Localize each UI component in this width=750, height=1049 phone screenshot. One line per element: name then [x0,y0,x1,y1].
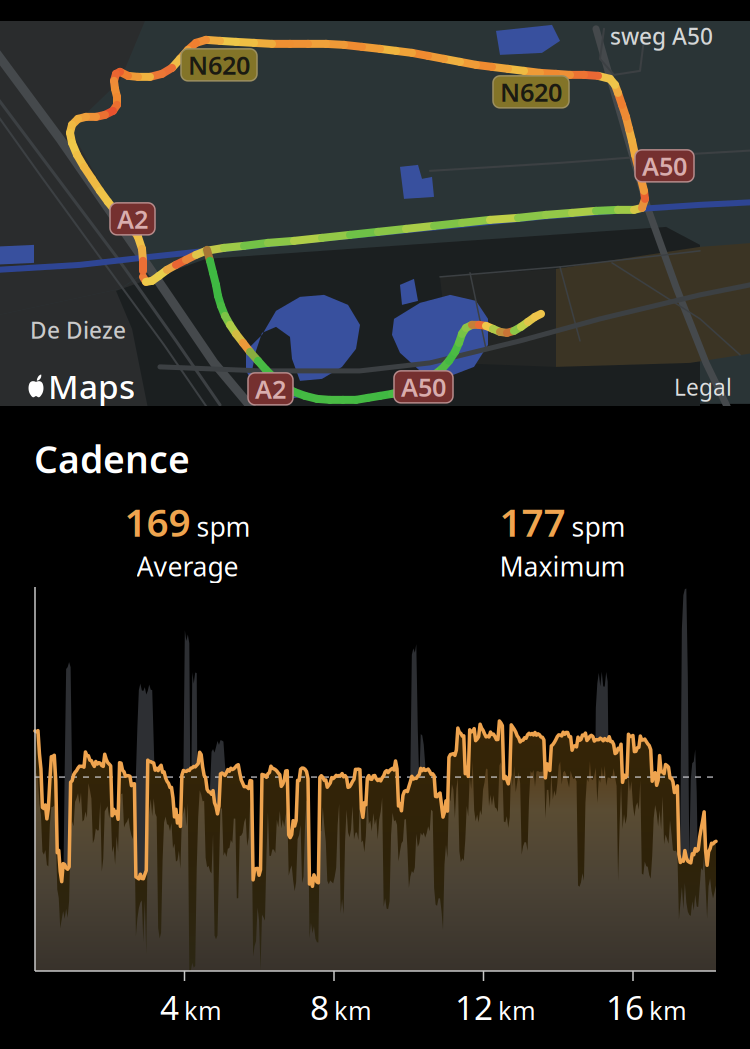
staticText: 177 [499,496,565,547]
staticText: A50 [401,370,446,404]
staticText: 12 [455,985,493,1029]
staticText: km [649,993,687,1027]
staticText: 4 [160,985,179,1029]
staticText: Maps [48,364,135,408]
staticText: 8 [310,985,329,1029]
staticText: Legal [674,372,732,402]
staticText: N620 [500,75,562,109]
staticText: De Dieze [30,315,126,345]
staticText: A2 [255,372,286,406]
staticText: spm [571,509,625,544]
staticText: km [334,993,372,1027]
staticText: A50 [642,149,687,183]
staticText: km [498,993,536,1027]
staticText: Maximum [499,548,625,584]
staticText: km [184,993,222,1027]
staticText: spm [196,509,250,544]
staticText: A2 [117,202,148,236]
staticText: sweg A50 [610,21,713,51]
staticText: Average [136,548,238,584]
staticText: N620 [188,48,250,82]
staticText: 16 [606,985,644,1029]
staticText: 169 [124,496,190,547]
staticText: Cadence [34,434,190,484]
